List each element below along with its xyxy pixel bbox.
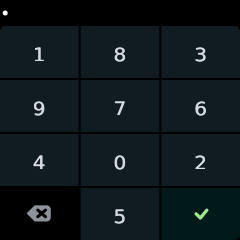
staticText: 6: [194, 97, 207, 120]
staticText: 0: [113, 151, 126, 174]
button[interactable]: Delete: [0, 188, 79, 240]
button[interactable]: 4: [0, 134, 79, 186]
staticText: 2: [194, 151, 207, 174]
staticText: 1: [33, 43, 46, 66]
button[interactable]: 5: [81, 188, 159, 240]
staticText: 3: [194, 43, 207, 66]
staticText: 3: [194, 43, 207, 66]
staticText: 4: [33, 151, 46, 174]
staticText: 9: [33, 97, 46, 120]
staticText: 2: [194, 151, 207, 174]
staticText: 8: [113, 43, 126, 66]
button[interactable]: 8: [81, 26, 159, 78]
staticText: 7: [114, 97, 127, 120]
staticText: 4: [33, 151, 46, 174]
button[interactable]: 7: [81, 80, 159, 132]
button[interactable]: 2: [161, 134, 240, 186]
button[interactable]: 1: [0, 26, 79, 78]
staticText: 5: [114, 205, 127, 228]
button[interactable]: 9: [0, 80, 79, 132]
button[interactable]: 6: [161, 80, 240, 132]
button[interactable]: 0: [81, 134, 159, 186]
staticText: 9: [33, 97, 46, 120]
staticText: 8: [114, 43, 127, 66]
staticText: 1: [33, 43, 46, 66]
staticText: 7: [113, 97, 126, 120]
staticText: 5: [113, 205, 126, 228]
button[interactable]: Confirm: [161, 188, 240, 240]
button[interactable]: 3: [161, 26, 240, 78]
staticText: 0: [114, 151, 127, 174]
staticText: 6: [194, 97, 207, 120]
